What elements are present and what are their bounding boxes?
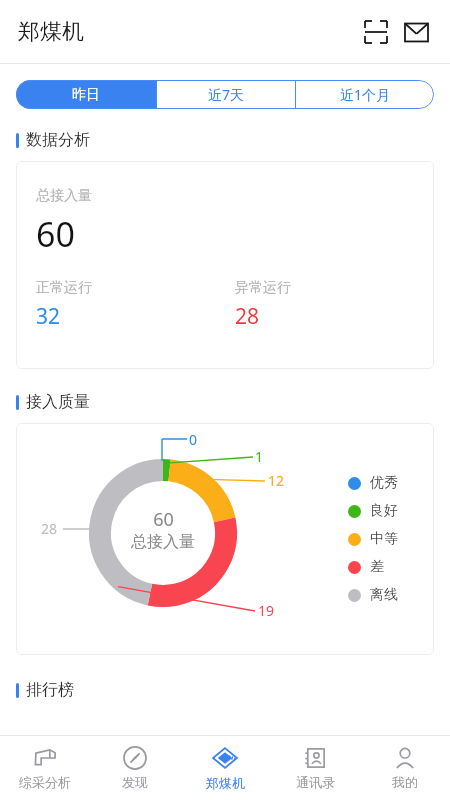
button[interactable]: 发现	[90, 736, 180, 800]
staticText: 0	[189, 430, 198, 449]
staticText: 优秀	[370, 474, 398, 492]
staticText: 通讯录	[296, 774, 335, 790]
staticText: 总接入量	[131, 532, 195, 552]
staticText: 近7天	[208, 85, 245, 104]
button[interactable]: Scan	[356, 12, 396, 52]
staticText: 接入质量	[26, 392, 90, 412]
staticText: 60	[36, 211, 75, 257]
staticText: 近1个月	[340, 85, 391, 104]
staticText: 数据分析	[26, 130, 90, 150]
staticText: 正常运行	[36, 279, 92, 297]
staticText: 28	[41, 519, 58, 538]
button[interactable]: 综采分析	[0, 736, 90, 800]
button[interactable]: 通讯录	[270, 736, 360, 800]
staticText: 昨日	[72, 86, 100, 104]
staticText: 差	[370, 558, 384, 576]
button[interactable]: 0	[16, 423, 434, 655]
button[interactable]: 近7天	[157, 80, 295, 109]
staticText: 良好	[370, 502, 398, 520]
staticText: 28	[235, 302, 260, 331]
staticText: 发现	[122, 774, 148, 790]
staticText: 郑煤机	[206, 775, 245, 791]
staticText: 郑煤机	[18, 18, 84, 46]
staticText: 综采分析	[19, 774, 71, 790]
button[interactable]: 昨日	[16, 80, 156, 109]
staticText: 32	[36, 302, 61, 331]
staticText: 异常运行	[235, 279, 291, 297]
button[interactable]: Messages	[396, 12, 436, 52]
staticText: 总接入量	[36, 187, 92, 205]
staticText: 19	[258, 601, 275, 620]
staticText: 离线	[370, 586, 398, 604]
staticText: 60	[153, 507, 174, 532]
button[interactable]: 我的	[360, 736, 450, 800]
staticText: 中等	[370, 530, 398, 548]
staticText: 我的	[392, 774, 418, 790]
button[interactable]: 近1个月	[296, 80, 434, 109]
staticText: 1	[255, 447, 264, 466]
staticText: 12	[268, 471, 285, 490]
staticText: 排行榜	[26, 680, 74, 700]
button[interactable]: 总接入量	[16, 161, 434, 369]
button[interactable]: 郑煤机	[180, 736, 270, 800]
